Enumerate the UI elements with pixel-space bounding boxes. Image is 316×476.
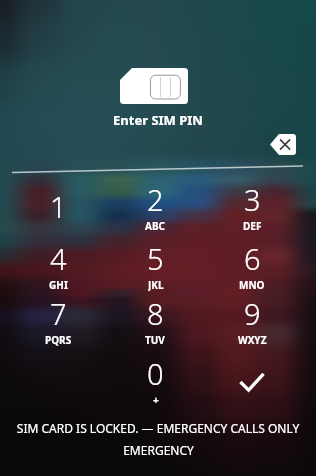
- button[interactable]: 0: [120, 354, 190, 406]
- staticText: PQRS: [45, 333, 72, 346]
- staticText: JKL: [148, 278, 164, 291]
- staticText: 9: [244, 294, 261, 333]
- button[interactable]: Enter: [232, 365, 272, 399]
- button[interactable]: EMERGENCY: [123, 442, 194, 458]
- staticText: 8: [147, 294, 164, 333]
- staticText: 1: [50, 187, 67, 226]
- staticText: 7: [50, 294, 67, 333]
- button[interactable]: 7: [23, 294, 93, 346]
- staticText: EMERGENCY: [123, 442, 194, 458]
- staticText: ABC: [145, 219, 165, 232]
- staticText: DEF: [243, 219, 262, 232]
- button[interactable]: 1: [23, 180, 93, 232]
- staticText: SIM CARD IS LOCKED. — EMERGENCY CALLS ON…: [0, 420, 316, 436]
- staticText: 5: [147, 239, 164, 278]
- button[interactable]: 9: [217, 294, 287, 346]
- staticText: GHI: [49, 278, 68, 291]
- staticText: TUV: [145, 333, 165, 346]
- button[interactable]: 3: [217, 180, 287, 232]
- staticText: 4: [50, 239, 67, 278]
- button[interactable]: 2: [120, 180, 190, 232]
- staticText: +: [153, 393, 159, 406]
- staticText: WXYZ: [238, 333, 267, 346]
- button[interactable]: Delete: [270, 134, 296, 155]
- button[interactable]: 5: [120, 239, 190, 291]
- button[interactable]: 6: [217, 239, 287, 291]
- staticText: 3: [244, 180, 261, 219]
- staticText: 6: [244, 239, 261, 278]
- staticText: 2: [147, 180, 164, 219]
- staticText: MNO: [239, 278, 265, 291]
- button[interactable]: 8: [120, 294, 190, 346]
- button[interactable]: 4: [23, 239, 93, 291]
- staticText: Enter SIM PIN: [0, 111, 316, 129]
- staticText: 0: [147, 354, 164, 393]
